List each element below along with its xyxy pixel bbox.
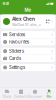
button[interactable]: Contacts [14, 88, 28, 100]
staticText: 9:41 [2, 1, 9, 6]
button[interactable]: Discover [28, 88, 42, 100]
staticText: WeChat ID: alex_c [12, 23, 41, 27]
staticText: Me [46, 94, 51, 98]
button[interactable]: Alex Chen [0, 14, 56, 28]
staticText: Favourites [9, 39, 29, 45]
staticText: Alex Chen [12, 16, 35, 22]
button[interactable]: Chats [0, 88, 14, 100]
button[interactable]: Favourites [1, 38, 55, 45]
staticText: Discover [28, 94, 42, 98]
staticText: Settings [9, 65, 25, 70]
staticText: Stickers [9, 49, 24, 54]
button[interactable]: Cards [1, 55, 55, 62]
staticText: Cards [9, 56, 21, 61]
button[interactable]: Stickers [1, 48, 55, 55]
staticText: Contacts [14, 94, 28, 98]
button[interactable]: Settings [1, 64, 55, 71]
staticText: Me [24, 7, 31, 13]
button[interactable]: Me [42, 88, 56, 100]
button[interactable]: Services [1, 31, 55, 38]
staticText: Services [9, 32, 25, 37]
staticText: Chats [2, 94, 11, 98]
